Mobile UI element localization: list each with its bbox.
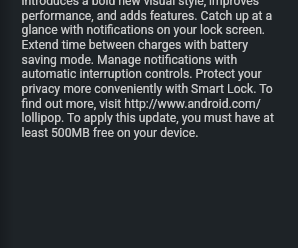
staticText: automatic interruption controls. Protect… [22,67,298,81]
staticText: saving mode. Manage notifications with [22,53,298,67]
staticText: introduces a bold new visual style, impr… [22,0,298,8]
staticText: performance, and adds features. Catch up… [22,9,298,23]
staticText: least 500MB free on your device. [22,126,298,140]
staticText: privacy more conveniently with Smart Loc… [22,82,298,96]
staticText: Extend time between charges with battery [22,38,298,52]
staticText: glance with notifications on your lock s… [22,23,298,37]
staticText: lollipop. To apply this update, you must… [22,111,298,125]
staticText: find out more, visit http://www.android.… [22,97,298,111]
